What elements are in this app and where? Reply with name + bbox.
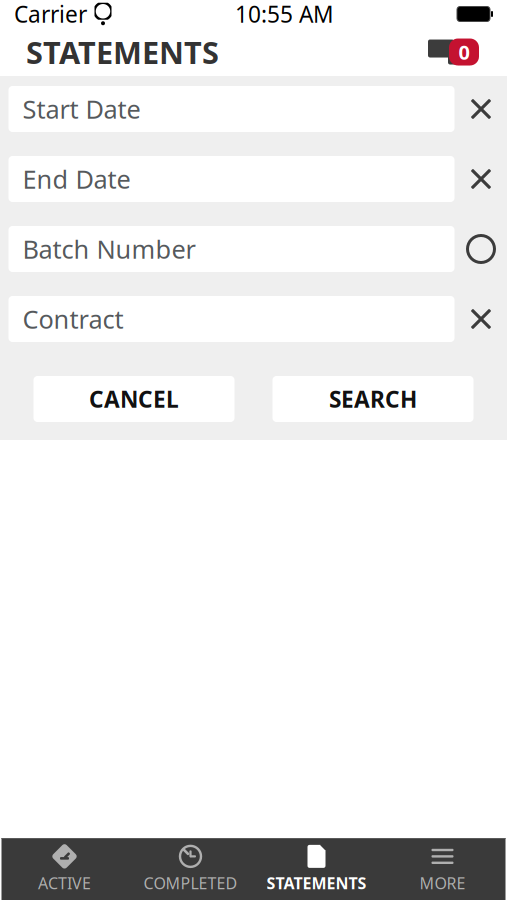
button[interactable]: Messages [419, 36, 481, 68]
staticText: STATEMENTS [266, 872, 366, 894]
button[interactable]: Clear Start Date [462, 86, 499, 132]
staticText: ACTIVE [38, 872, 91, 894]
staticText: CANCEL [89, 384, 179, 414]
button[interactable]: Contract [8, 296, 454, 342]
button[interactable]: ACTIVE [1, 838, 127, 900]
button[interactable]: MORE [379, 838, 505, 900]
staticText: 0 [458, 39, 469, 65]
staticText: COMPLETED [143, 872, 237, 894]
button[interactable]: Clear Contract [462, 296, 499, 342]
staticText: SEARCH [329, 384, 417, 414]
staticText: Contract [22, 302, 123, 336]
button[interactable]: End Date [8, 156, 454, 202]
staticText: Batch Number [22, 232, 195, 266]
staticText: End Date [22, 162, 130, 196]
button[interactable]: Batch Number [8, 226, 454, 272]
button[interactable]: SEARCH [272, 376, 473, 422]
button[interactable]: Start Date [8, 86, 454, 132]
button[interactable]: COMPLETED [127, 838, 253, 900]
staticText: 10:55 AM [235, 0, 334, 29]
button[interactable]: Select Batch Number [462, 226, 499, 272]
staticText: MORE [419, 872, 465, 894]
staticText: Carrier [14, 0, 87, 29]
button[interactable]: STATEMENTS [253, 838, 379, 900]
button[interactable]: Clear End Date [462, 156, 499, 202]
button[interactable]: CANCEL [33, 376, 234, 422]
staticText: STATEMENTS [26, 32, 219, 72]
staticText: Start Date [22, 92, 140, 126]
